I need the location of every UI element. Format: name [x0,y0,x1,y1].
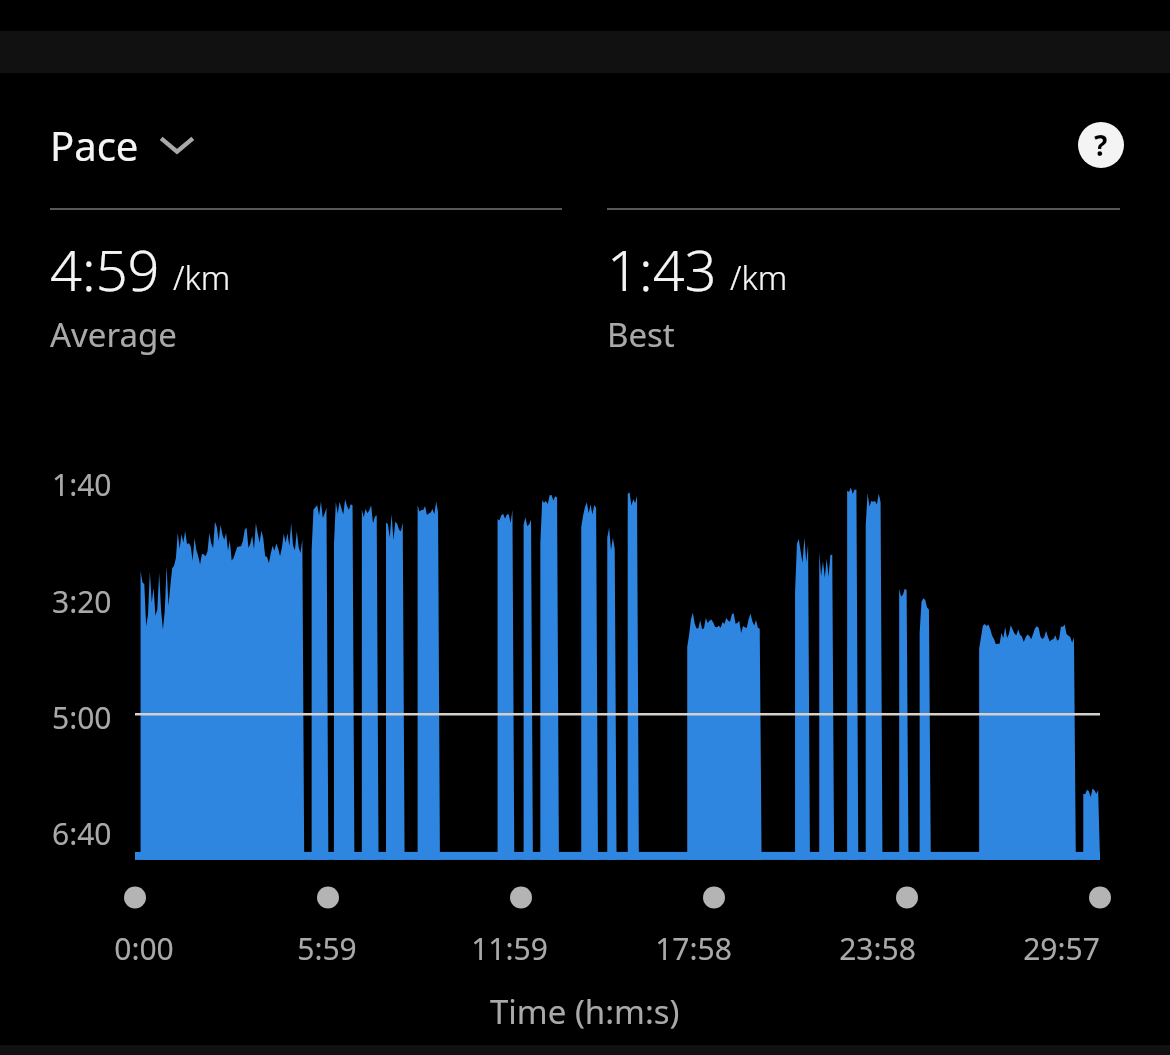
button[interactable]: 4:59 [50,208,562,357]
staticText: 1:40 [52,464,112,505]
staticText: 6:40 [52,813,112,854]
staticText: 1:43 [607,231,717,307]
staticText: 4:59 [50,231,160,307]
staticText: /km [173,255,231,300]
button[interactable]: Help [1078,122,1124,168]
button[interactable]: 1:43 [607,208,1120,357]
staticText: Best [607,312,675,357]
staticText: /km [730,255,788,300]
button[interactable]: Pace [50,118,195,172]
staticText: Time (h:m:s) [490,989,680,1034]
staticText: Average [50,312,177,357]
staticText: Pace [50,118,139,172]
staticText: 3:20 [52,581,112,622]
staticText: 5:59 [297,928,357,969]
staticText: 11:59 [471,928,548,969]
staticText: 0:00 [114,928,174,969]
staticText: 5:00 [52,697,112,738]
staticText: ? [1094,126,1108,164]
staticText: 29:57 [1023,928,1100,969]
staticText: 23:58 [839,928,916,969]
staticText: 17:58 [655,928,732,969]
